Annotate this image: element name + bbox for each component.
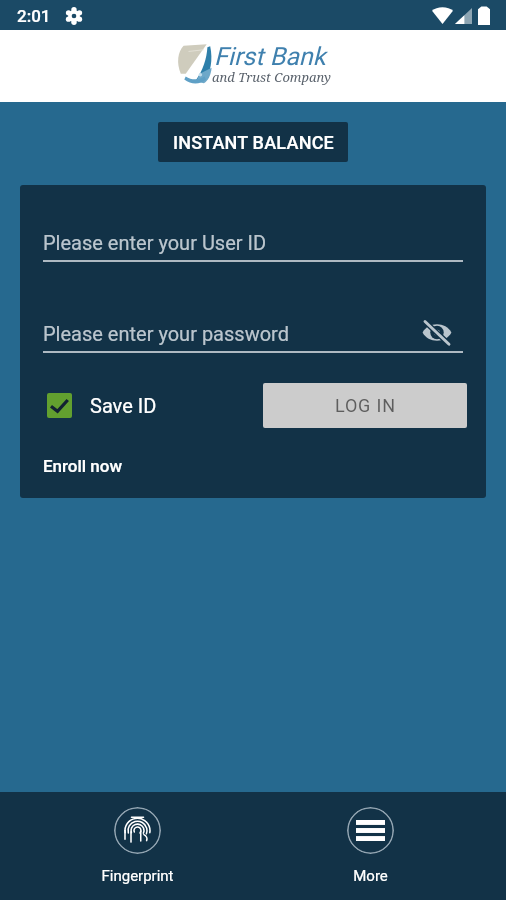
staticText: 2:01 <box>17 6 51 26</box>
staticText: Enroll now <box>43 456 123 476</box>
staticText: and Trust Company <box>212 68 331 86</box>
staticText: Save ID <box>90 394 157 417</box>
staticText: Fingerprint <box>101 867 174 885</box>
staticText: Please enter your password <box>43 322 289 345</box>
staticText: LOG IN <box>335 395 396 416</box>
staticText: More <box>353 867 388 885</box>
button[interactable]: Fingerprint sign in <box>101 792 174 885</box>
staticText: INSTANT BALANCE <box>173 132 334 153</box>
button[interactable]: Please enter your password <box>43 316 463 353</box>
staticText: Please enter your User ID <box>43 231 267 254</box>
button[interactable]: More options <box>347 792 394 885</box>
button[interactable]: Enroll now <box>43 456 123 476</box>
button[interactable]: INSTANT BALANCE <box>158 122 348 162</box>
button[interactable]: Save ID <box>47 393 157 418</box>
button[interactable]: Show password <box>422 320 463 345</box>
button[interactable]: LOG IN <box>263 383 467 428</box>
button[interactable]: Please enter your User ID <box>43 225 463 262</box>
staticText: First Bank <box>214 42 326 71</box>
